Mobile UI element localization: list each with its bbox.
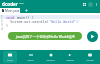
staticText: }: [6, 23, 9, 27]
staticText: 2: [1, 19, 3, 23]
staticText: void: [6, 15, 17, 19]
button[interactable]: Profile: [80, 50, 100, 64]
button[interactable]: Videos: [60, 50, 80, 64]
button[interactable]: New file: [23, 8, 29, 13]
staticText: );: [76, 19, 81, 23]
staticText: "Hello World": [49, 19, 76, 23]
button[interactable]: Main.java: [0, 8, 20, 13]
staticText: Videos: [66, 58, 74, 61]
staticText: 4: [1, 27, 3, 31]
staticText: 3: [1, 23, 3, 27]
button[interactable]: Input: [20, 50, 40, 64]
staticText: Main.java: [5, 9, 20, 13]
staticText: PRO: [19, 2, 24, 5]
staticText: Java实现了一个简单的Hello World程序: [16, 34, 75, 39]
button[interactable]: Save: [81, 1, 87, 7]
staticText: System.out.println(: [6, 19, 49, 23]
button[interactable]: Run code: [87, 31, 98, 42]
staticText: main() {: [17, 15, 34, 19]
button[interactable]: Code: [0, 50, 20, 64]
button[interactable]: Output: [40, 50, 60, 64]
staticText: 1: [1, 15, 3, 19]
staticText: Output: [46, 58, 55, 61]
button[interactable]: Account: [87, 1, 93, 7]
staticText: Code: [7, 58, 13, 61]
staticText: Input: [27, 58, 34, 61]
button[interactable]: Java实现了一个简单的Hello World程序: [8, 32, 82, 40]
staticText: dcoder: [2, 1, 18, 7]
staticText: Profile: [86, 58, 94, 61]
button[interactable]: More options: [93, 1, 99, 7]
